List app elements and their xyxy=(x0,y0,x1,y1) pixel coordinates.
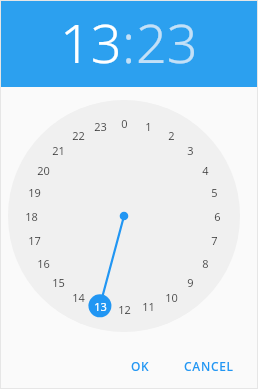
staticText: 23 xyxy=(94,119,107,134)
staticText: 13 xyxy=(60,5,122,79)
staticText: 6 xyxy=(214,209,221,224)
button[interactable]: OK xyxy=(125,351,156,381)
staticText: : xyxy=(122,5,136,79)
staticText: 15 xyxy=(52,275,65,290)
staticText: 20 xyxy=(37,163,50,178)
staticText: 4 xyxy=(202,163,209,178)
staticText: OK xyxy=(131,358,150,374)
staticText: 23 xyxy=(136,5,198,79)
staticText: 8 xyxy=(202,256,209,271)
staticText: 12 xyxy=(118,302,131,317)
staticText: 21 xyxy=(52,143,65,158)
staticText: 7 xyxy=(211,233,218,248)
staticText: 14 xyxy=(72,290,85,305)
staticText: 5 xyxy=(211,185,218,200)
button[interactable]: CANCEL xyxy=(178,351,240,381)
staticText: 9 xyxy=(187,275,194,290)
staticText: 2 xyxy=(168,128,175,143)
staticText: 0 xyxy=(121,116,128,131)
staticText: 13 xyxy=(94,299,107,314)
button[interactable]: Select minute 23 xyxy=(136,5,198,79)
staticText: 22 xyxy=(72,128,85,143)
staticText: 11 xyxy=(142,299,155,314)
button[interactable]: Select hour 13 xyxy=(60,5,122,79)
staticText: 10 xyxy=(165,290,178,305)
staticText: 3 xyxy=(187,143,194,158)
staticText: 18 xyxy=(25,209,38,224)
staticText: 1 xyxy=(145,119,152,134)
staticText: 16 xyxy=(37,256,50,271)
button[interactable]: 24 hour clock face, hour 13 selected xyxy=(0,87,258,343)
staticText: 17 xyxy=(28,233,41,248)
staticText: CANCEL xyxy=(184,358,234,374)
staticText: 19 xyxy=(28,185,41,200)
